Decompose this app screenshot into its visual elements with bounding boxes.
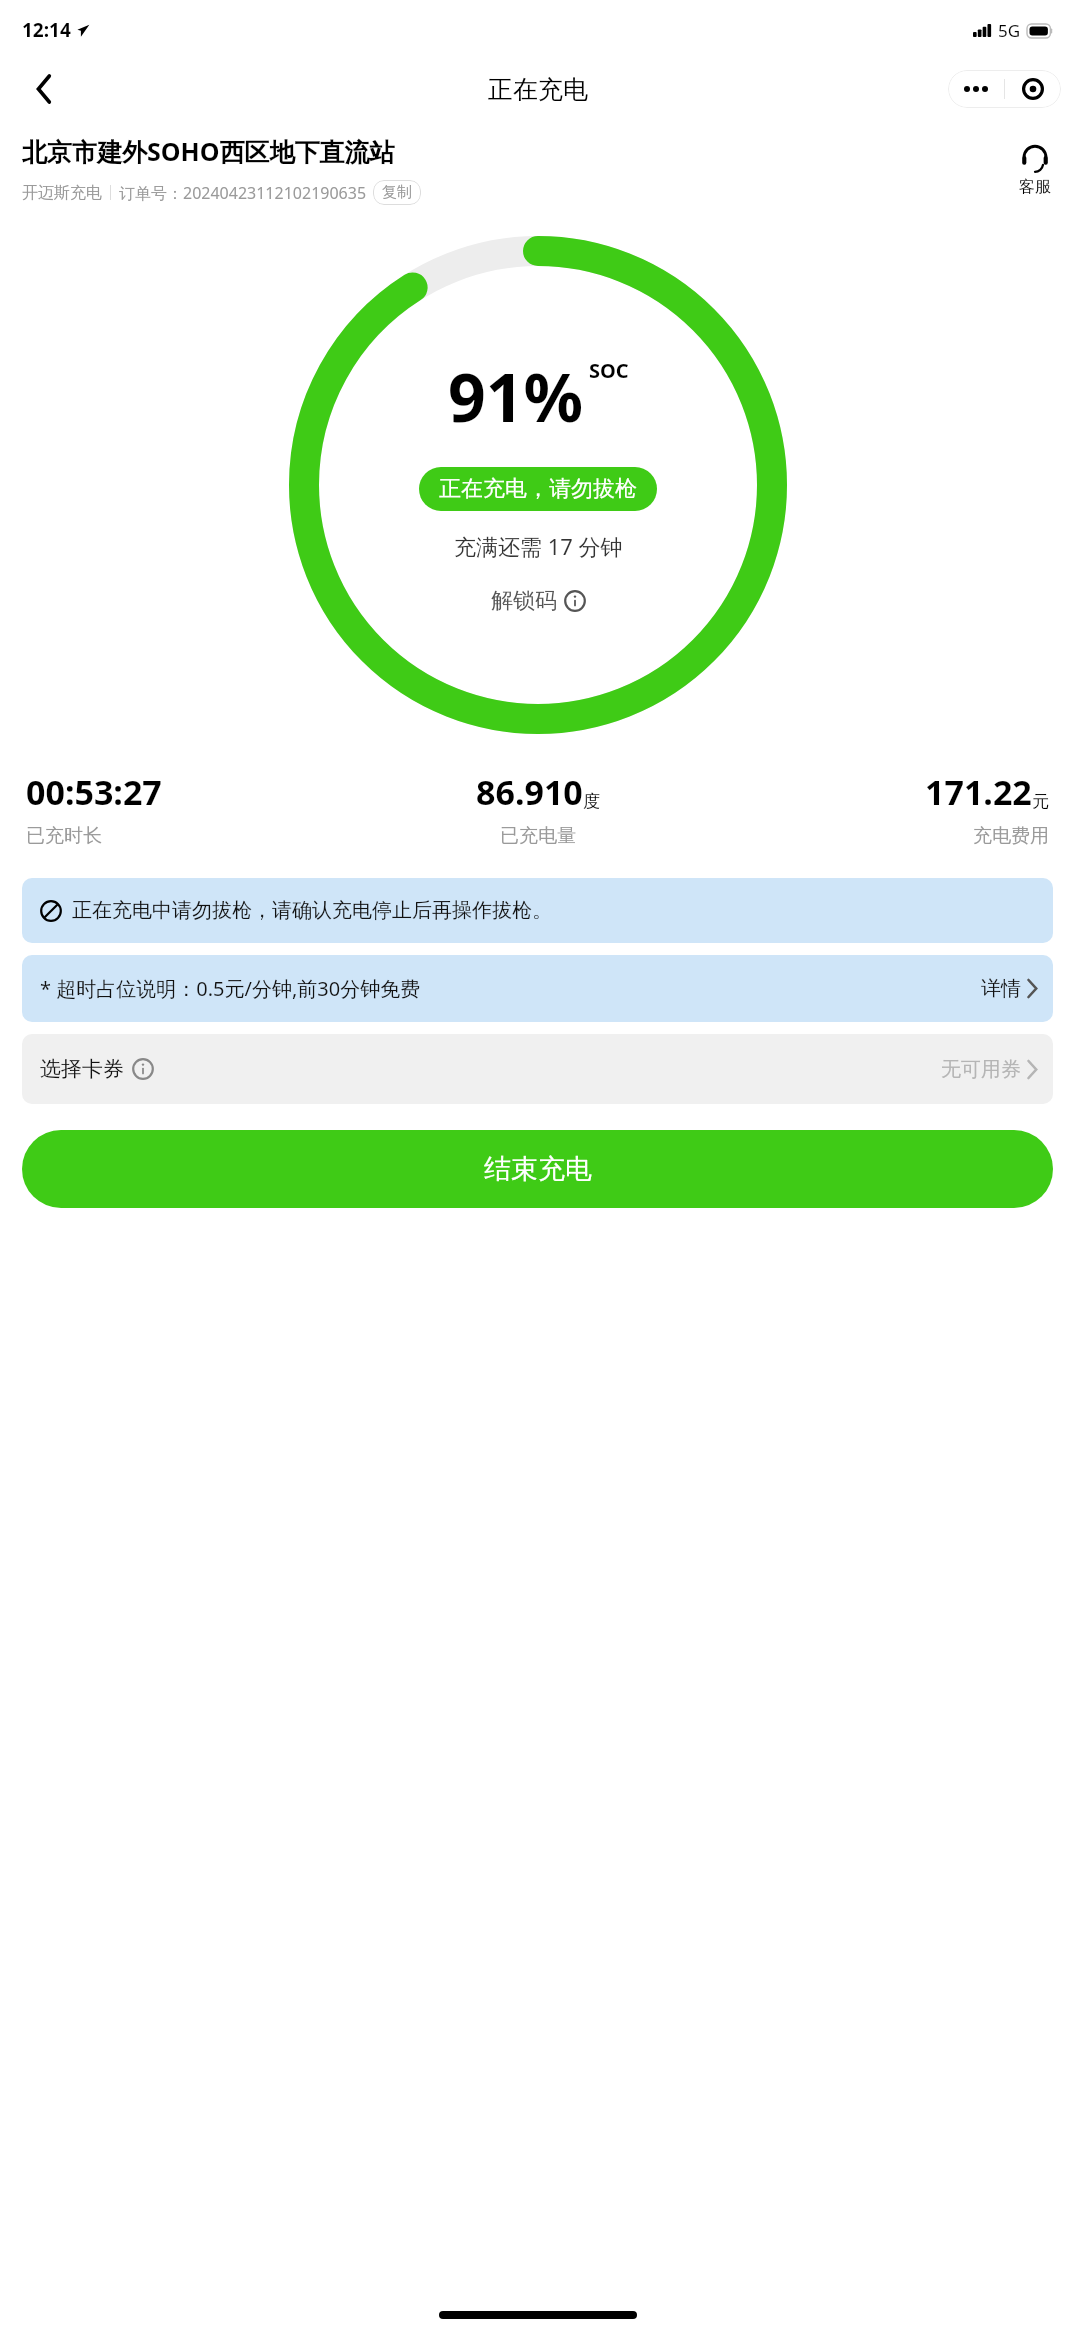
staticText: 无可用券 [941, 1057, 1021, 1082]
staticText: SOC [589, 357, 629, 384]
staticText: 开迈斯充电 [22, 183, 102, 203]
staticText: 结束充电 [484, 1152, 592, 1186]
button[interactable]: 结束充电 [22, 1130, 1053, 1208]
button[interactable]: 正在充电中请勿拔枪，请确认充电停止后再操作拔枪。 [22, 878, 1053, 943]
staticText: 86.910 [476, 769, 583, 815]
button[interactable]: 客服 [1011, 139, 1059, 201]
staticText: 解锁码 [491, 587, 557, 615]
staticText: * 超时占位说明：0.5元/分钟,前30分钟免费 [40, 975, 981, 1002]
staticText: 正在充电 [488, 74, 588, 105]
staticText: 度 [583, 791, 600, 812]
staticText: 已充时长 [26, 824, 102, 848]
button[interactable]: 选择卡券 [22, 1034, 1053, 1104]
staticText: 客服 [1019, 177, 1051, 197]
button[interactable]: Close [1005, 70, 1061, 108]
staticText: 充满还需 17 分钟 [454, 531, 623, 561]
button[interactable]: 正在充电，请勿拔枪 [419, 467, 657, 511]
staticText: 12:14 [22, 17, 71, 43]
staticText: 91% [448, 351, 584, 441]
staticText: 复制 [382, 183, 412, 202]
staticText: 充电费用 [973, 824, 1049, 848]
staticText: 正在充电，请勿拔枪 [439, 475, 637, 503]
staticText: 订单号：20240423112102190635 [119, 182, 367, 204]
staticText: 00:53:27 [26, 769, 162, 815]
staticText: 171.22 [925, 769, 1032, 815]
button[interactable]: 复制 [373, 180, 421, 205]
staticText: 详情 [981, 976, 1021, 1001]
staticText: 已充电量 [500, 824, 576, 848]
button[interactable]: 解锁码 [487, 583, 590, 619]
staticText: 5G [998, 19, 1021, 42]
staticText: 选择卡券 [40, 1056, 124, 1082]
button[interactable]: * 超时占位说明：0.5元/分钟,前30分钟免费 [22, 955, 1053, 1022]
button[interactable]: Back [22, 67, 66, 111]
staticText: 正在充电中请勿拔枪，请确认充电停止后再操作拔枪。 [72, 898, 552, 923]
staticText: 北京市建外SOHO西区地下直流站 [22, 134, 395, 168]
button[interactable]: More [948, 70, 1004, 108]
staticText: 元 [1032, 791, 1049, 812]
